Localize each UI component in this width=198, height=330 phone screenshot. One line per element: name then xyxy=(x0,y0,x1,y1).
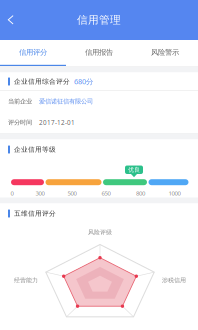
button[interactable]: 信用评分 xyxy=(0,40,66,66)
staticText: 评分时间 xyxy=(8,119,32,126)
button[interactable]: Back xyxy=(0,5,22,35)
staticText: 五维信用评分 xyxy=(14,209,56,218)
staticText: 800 xyxy=(136,189,145,197)
staticText: 当前企业 xyxy=(8,98,32,105)
staticText: 爱信诺征信有限公司 xyxy=(39,98,93,105)
staticText: 信用管理 xyxy=(77,13,121,27)
staticText: 650 xyxy=(101,189,110,197)
staticText: 企业信用等级 xyxy=(14,145,56,154)
staticText: 2017-12-01 xyxy=(39,118,75,127)
staticText: 1000 xyxy=(168,189,180,197)
staticText: 信用评分 xyxy=(19,48,47,57)
button[interactable]: 风险警示 xyxy=(132,40,198,66)
staticText: 680分 xyxy=(74,76,93,86)
staticText: 风险警示 xyxy=(151,48,179,57)
staticText: 风险评级 xyxy=(88,228,112,236)
staticText: 0 xyxy=(10,189,13,197)
staticText: 涉税信用 xyxy=(162,276,186,284)
staticText: 企业信用综合评分 xyxy=(14,77,70,86)
staticText: 500 xyxy=(67,189,76,197)
staticText: 信用报告 xyxy=(85,48,113,57)
staticText: 300 xyxy=(35,189,44,197)
button[interactable]: 信用报告 xyxy=(66,40,132,66)
staticText: 经营能力 xyxy=(14,276,38,284)
staticText: 优良 xyxy=(128,166,140,174)
